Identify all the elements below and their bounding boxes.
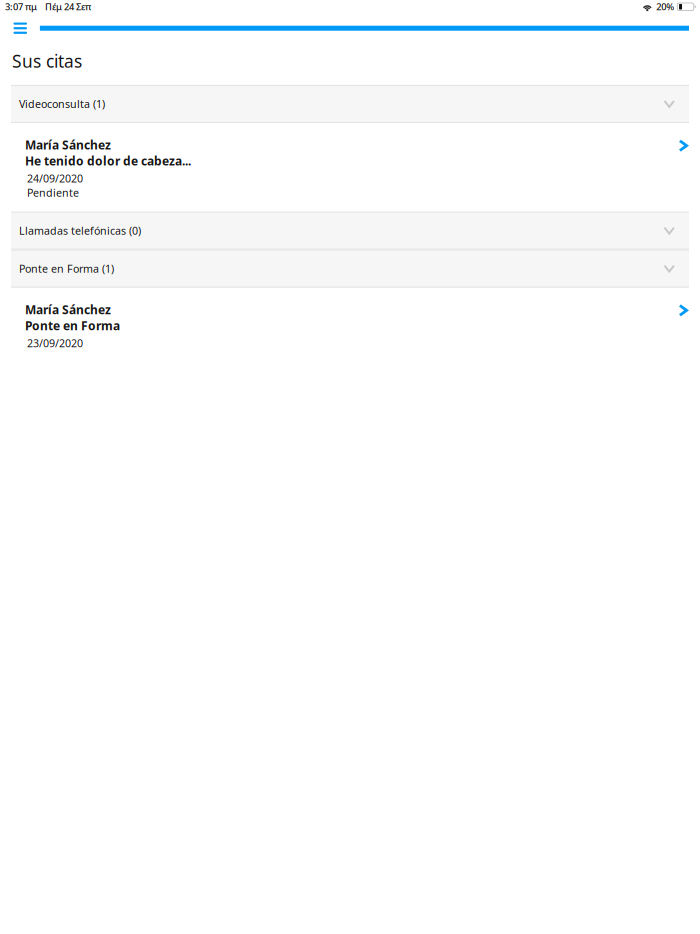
staticText: Ponte en Forma (1) [19,261,114,276]
staticText: Ponte en Forma [25,318,120,333]
staticText: Πέμ 24 Σεπ [45,1,91,13]
staticText: 23/09/2020 [27,336,83,350]
staticText: 3:07 πμ [5,1,37,13]
button[interactable]: María Sánchez [11,288,689,362]
staticText: Videoconsulta (1) [19,97,105,111]
staticText: 20% [656,1,674,13]
staticText: He tenido dolor de cabeza... [25,153,191,169]
button[interactable]: Ponte en Forma (1) [11,250,689,288]
button[interactable]: Llamadas telefónicas (0) [11,212,689,250]
staticText: Llamadas telefónicas (0) [19,223,141,238]
staticText: María Sánchez [25,137,111,153]
button[interactable]: Menu [0,17,40,39]
staticText: María Sánchez [25,302,111,317]
staticText: Pendiente [27,185,79,200]
button[interactable]: María Sánchez [11,123,689,212]
button[interactable]: Videoconsulta (1) [11,85,689,123]
staticText: Sus citas [12,49,82,72]
staticText: 24/09/2020 [27,171,83,185]
